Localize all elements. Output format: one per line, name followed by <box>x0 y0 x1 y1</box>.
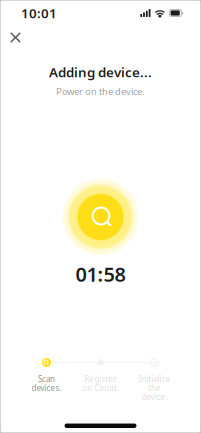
staticText: Adding device... <box>49 63 152 81</box>
staticText: device. <box>141 392 167 402</box>
staticText: Register <box>84 374 116 384</box>
staticText: on Cloud. <box>82 383 118 393</box>
staticText: Scan <box>38 374 55 384</box>
button[interactable]: Close <box>2 24 29 51</box>
staticText: Power on the device. <box>56 85 145 98</box>
staticText: devices. <box>31 383 61 393</box>
staticText: Initialize <box>138 374 170 384</box>
staticText: 01:58 <box>75 261 125 287</box>
staticText: the <box>148 383 161 393</box>
staticText: 10:01 <box>21 4 57 22</box>
